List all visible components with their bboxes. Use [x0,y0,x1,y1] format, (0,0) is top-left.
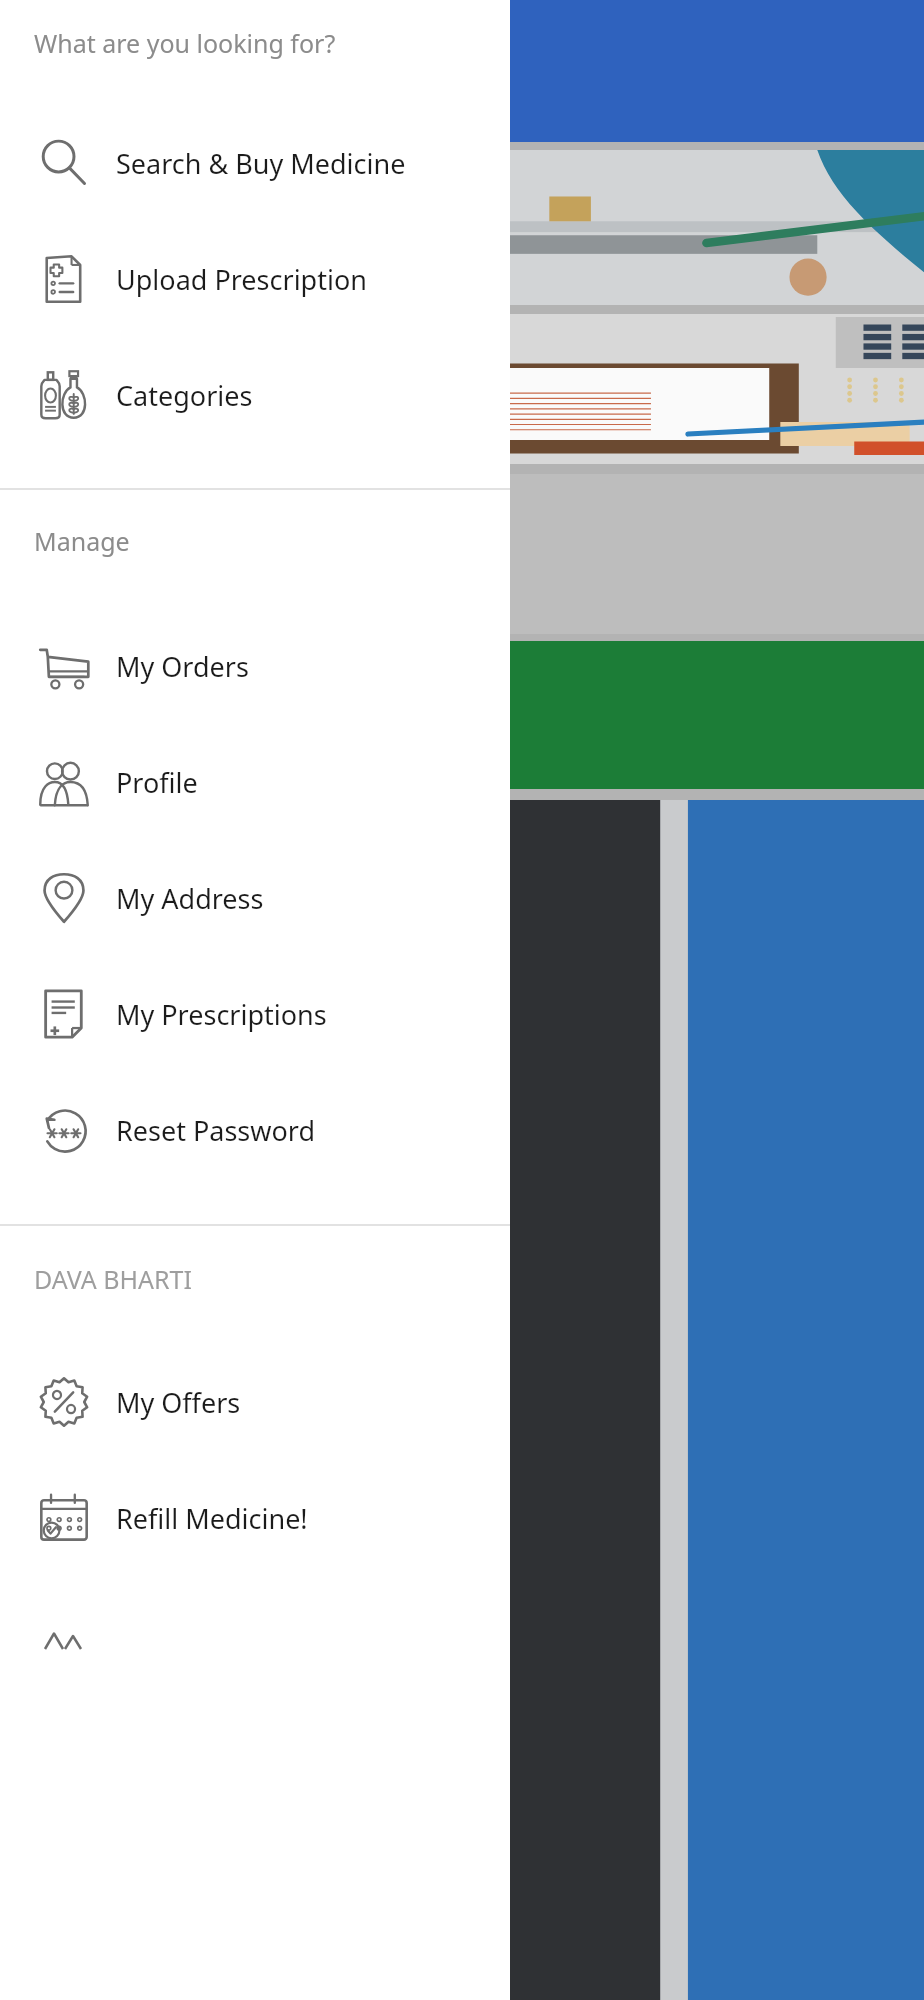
staticText: Profile [116,764,198,801]
button[interactable]: Categories [0,337,510,453]
staticText: Reset Password [116,1112,316,1149]
button[interactable]: My Orders [0,608,510,724]
button[interactable] [0,1606,510,1666]
button[interactable]: Manage [152,474,924,634]
staticText: My Orders [116,648,249,685]
button[interactable]: Upload Prescription [0,221,510,337]
button[interactable]: My Address [0,840,510,956]
staticText: My Prescriptions [116,996,327,1033]
staticText: Categories [116,377,253,414]
staticText: Refill Medicine! [116,1500,308,1537]
button[interactable]: My Prescriptions [0,956,510,1072]
button[interactable]: Profile [0,724,510,840]
staticText: Manage [34,524,130,558]
staticText: Upload Prescription [116,261,367,298]
staticText: Search & Buy Medicine [116,145,406,182]
button[interactable]: Refill Medicine! [0,1460,510,1576]
button[interactable]: Search & Buy Medicine [0,105,510,221]
button[interactable]: My Offers [0,1344,510,1460]
staticText: DAVA BHARTI [34,1262,192,1296]
button[interactable]: Reset Password [0,1072,510,1188]
staticText: My Offers [116,1384,241,1421]
staticText: My Address [116,880,264,917]
button[interactable]: pp [152,641,924,789]
staticText: What are you looking for? [34,26,336,60]
